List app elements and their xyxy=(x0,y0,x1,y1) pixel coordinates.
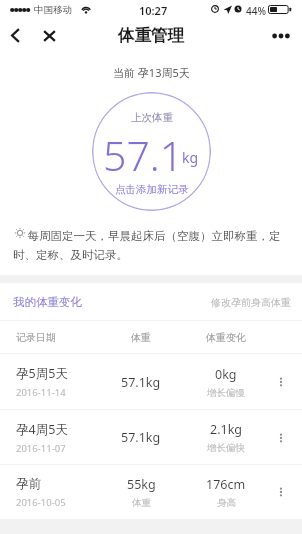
button[interactable]: Close xyxy=(35,20,63,51)
staticText: 修改孕前身高体重 xyxy=(211,296,291,309)
button[interactable]: 上次体重 xyxy=(92,92,211,211)
staticText: 0kg xyxy=(215,366,237,383)
staticText: 44% xyxy=(246,4,266,18)
button[interactable]: Row options xyxy=(269,465,293,519)
staticText: 点击添加新记录 xyxy=(115,183,189,196)
staticText: 我的体重变化 xyxy=(13,295,82,309)
button[interactable]: 孕4周5天 xyxy=(0,410,302,465)
staticText: 57.1kg xyxy=(121,429,161,446)
staticText: 176cm xyxy=(206,476,246,493)
staticText: 上次体重 xyxy=(131,111,173,124)
staticText: 增长偏慢 xyxy=(207,387,245,399)
staticText: 57.1 xyxy=(103,127,184,183)
staticText: 2.1kg xyxy=(210,421,243,438)
staticText: 10:27 xyxy=(139,3,168,18)
staticText: 每周固定一天，早晨起床后（空腹）立即称重，定时、定称、及时记录。 xyxy=(13,228,290,262)
staticText: 2016-10-05 xyxy=(16,496,66,509)
button[interactable]: 我的体重变化 xyxy=(13,283,103,321)
staticText: 孕4周5天 xyxy=(16,421,68,438)
staticText: 体重管理 xyxy=(118,25,184,46)
button[interactable]: 孕前 xyxy=(0,465,302,519)
staticText: 体重 xyxy=(131,331,151,344)
staticText: kg xyxy=(182,148,199,167)
staticText: 体重 xyxy=(132,497,151,509)
button[interactable]: Row options xyxy=(269,410,293,465)
staticText: 孕前 xyxy=(16,476,41,492)
staticText: 身高 xyxy=(217,497,236,509)
button[interactable]: Back xyxy=(1,20,29,51)
button[interactable]: 修改孕前身高体重 xyxy=(211,283,293,321)
staticText: 当前 孕13周5天 xyxy=(113,65,190,80)
staticText: 体重变化 xyxy=(206,331,246,344)
staticText: 增长偏快 xyxy=(207,442,245,454)
staticText: 2016-11-14 xyxy=(16,386,66,399)
staticText: 55kg xyxy=(127,476,156,493)
staticText: 中国移动 xyxy=(34,4,72,16)
button[interactable]: More options xyxy=(262,20,300,51)
button[interactable]: 孕5周5天 xyxy=(0,354,302,410)
staticText: 57.1kg xyxy=(121,374,161,391)
staticText: 孕5周5天 xyxy=(16,365,68,382)
button[interactable]: Row options xyxy=(269,354,293,410)
staticText: 记录日期 xyxy=(16,331,56,344)
staticText: 2016-11-07 xyxy=(16,442,66,455)
